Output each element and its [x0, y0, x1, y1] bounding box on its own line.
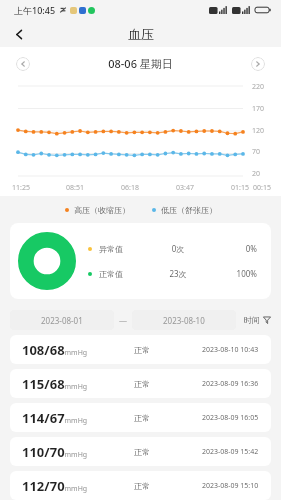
staticText: 异常值	[99, 244, 133, 254]
staticText: 2023-08-09 16:36	[202, 379, 259, 389]
staticText: 01:15	[231, 183, 249, 193]
staticText: 高压（收缩压）	[74, 205, 130, 215]
staticText: 114/67mmHg	[22, 409, 88, 427]
button[interactable]: 114/67mmHg	[10, 403, 271, 432]
button[interactable]: Previous day	[16, 57, 30, 71]
staticText: 120	[252, 126, 265, 136]
staticText: 06:18	[121, 183, 139, 193]
staticText: 2023-08-10	[163, 315, 205, 326]
button[interactable]: 110/70mmHg	[10, 437, 271, 466]
staticText: 2023-08-09 15:10	[202, 481, 259, 491]
staticText: 正常	[134, 413, 150, 423]
staticText: 108/68mmHg	[22, 341, 88, 359]
staticText: 正常	[134, 447, 150, 457]
button[interactable]: Next day	[251, 57, 265, 71]
button[interactable]: 108/68mmHg	[10, 335, 271, 364]
staticText: 0次	[133, 243, 223, 254]
staticText: 时间	[244, 315, 260, 325]
staticText: 正常	[134, 481, 150, 491]
staticText: 220	[252, 82, 265, 92]
staticText: 0%	[223, 243, 257, 254]
button[interactable]: 115/68mmHg	[10, 369, 271, 398]
button[interactable]: 2023-08-10	[132, 310, 236, 330]
staticText: 正常	[134, 379, 150, 389]
staticText: 23次	[133, 268, 223, 279]
staticText: 100%	[223, 268, 257, 279]
staticText: 110/70mmHg	[22, 443, 88, 461]
staticText: 08:51	[66, 183, 84, 193]
staticText: 正常	[134, 345, 150, 355]
staticText: 2023-08-01	[41, 315, 83, 326]
staticText: 115/68mmHg	[22, 375, 88, 393]
button[interactable]: 时间	[244, 310, 271, 330]
staticText: 112/70mmHg	[22, 477, 88, 495]
button[interactable]: 2023-08-01	[10, 310, 114, 330]
staticText: 170	[252, 104, 265, 114]
staticText: —	[119, 315, 127, 326]
staticText: 血压	[128, 26, 154, 42]
staticText: 03:47	[176, 183, 194, 193]
staticText: 00:15	[253, 183, 271, 193]
button[interactable]: 112/70mmHg	[10, 471, 271, 500]
staticText: 2023-08-10 10:43	[202, 345, 259, 355]
staticText: 08-06 星期日	[30, 56, 251, 71]
staticText: 2023-08-09 16:05	[202, 413, 259, 423]
staticText: 正常值	[99, 269, 133, 279]
staticText: 2023-08-09 15:42	[202, 447, 259, 457]
staticText: 20	[252, 169, 261, 179]
button[interactable]: Back	[8, 23, 30, 45]
staticText: 低压（舒张压）	[161, 205, 217, 215]
staticText: 11:25	[12, 183, 30, 193]
staticText: 70	[252, 147, 261, 157]
staticText: 上午10:45	[14, 4, 56, 16]
